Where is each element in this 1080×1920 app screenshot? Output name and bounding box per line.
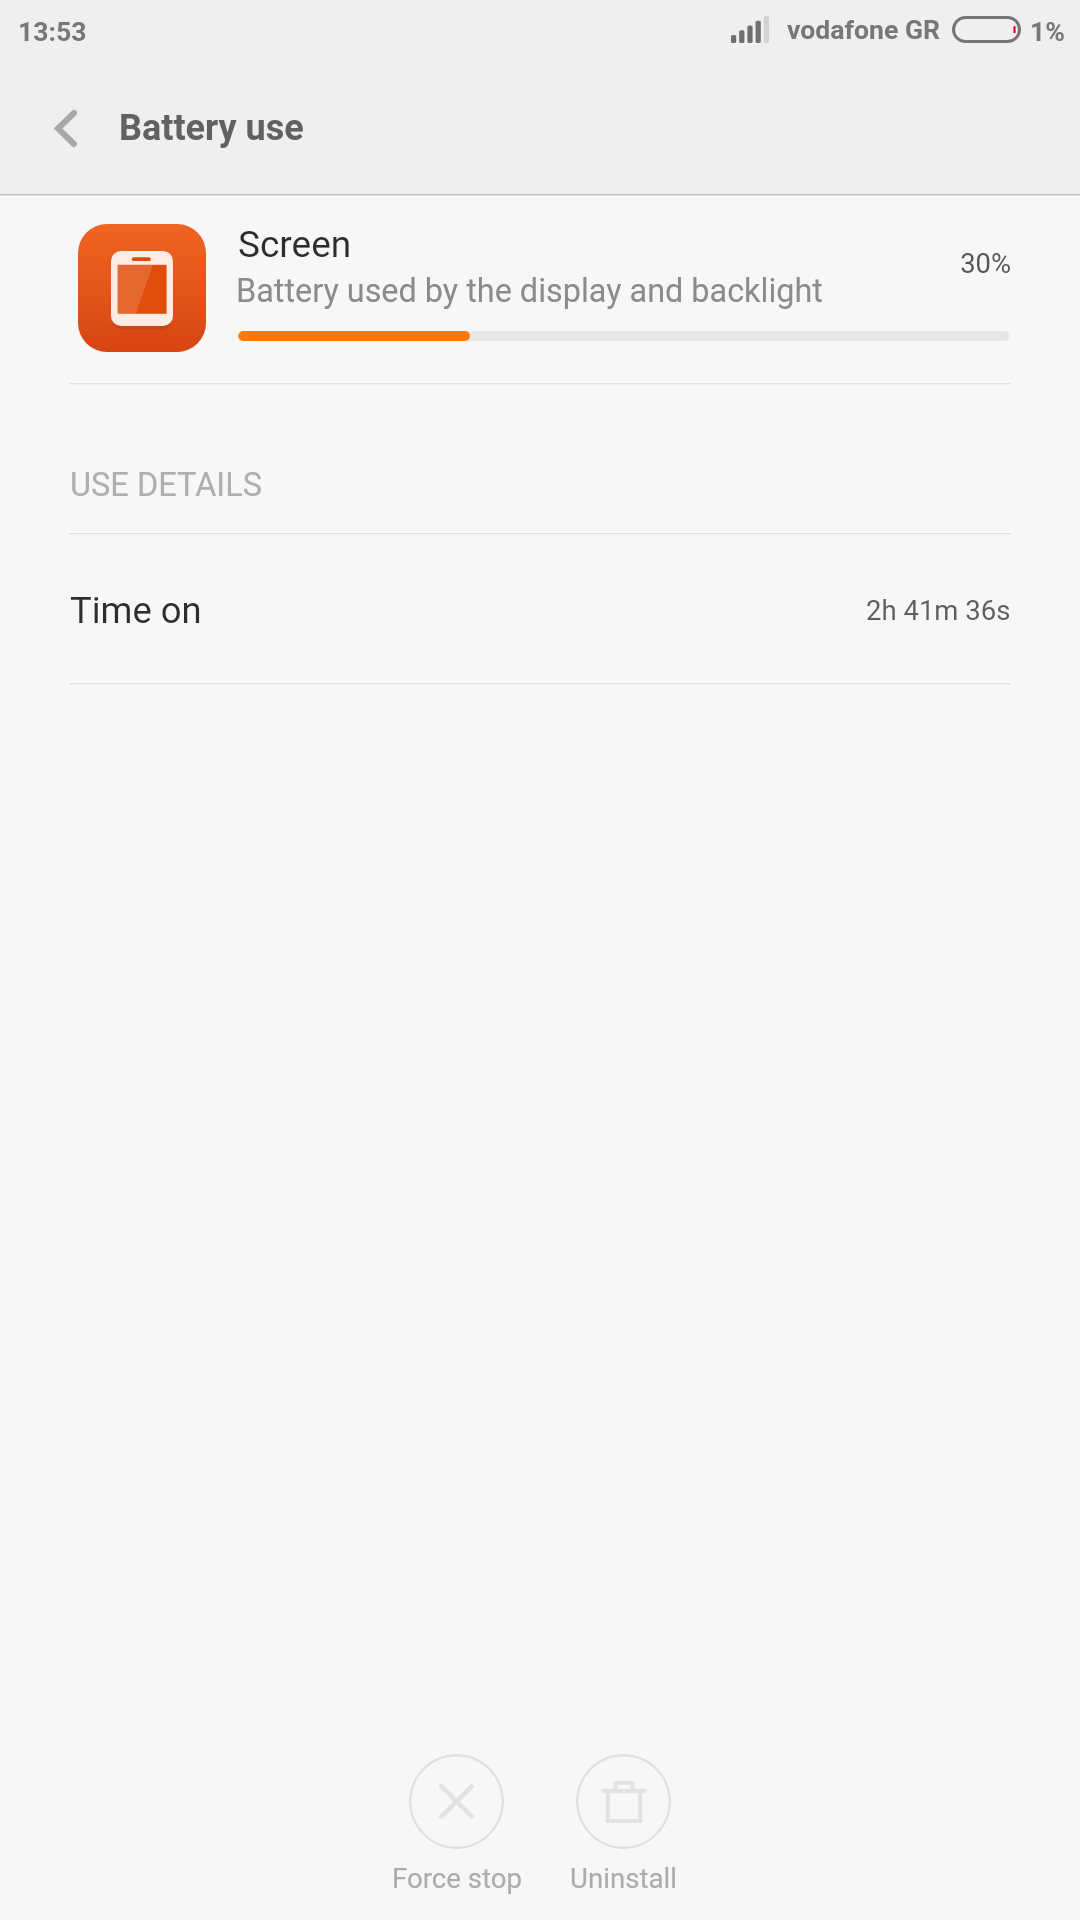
staticText: Battery used by the display and backligh… [236,272,823,310]
staticText: 2h 41m 36s [866,594,1011,626]
staticText: Battery use [119,107,304,149]
staticText: Force stop [392,1862,522,1894]
staticText: 30% [960,248,1011,280]
button[interactable] [0,197,1080,383]
staticText: USE DETAILS [70,466,263,504]
staticText: Uninstall [570,1862,677,1894]
button[interactable]: Back [22,84,110,172]
button[interactable]: Force stop [373,1754,540,1894]
button[interactable]: Time on [0,534,1080,683]
staticText: Screen [238,223,352,266]
staticText: vodafone GR [787,14,941,45]
staticText: 13:53 [18,16,87,47]
staticText: Time on [70,589,202,632]
button[interactable]: Uninstall [540,1754,707,1894]
staticText: 1% [1030,16,1065,47]
